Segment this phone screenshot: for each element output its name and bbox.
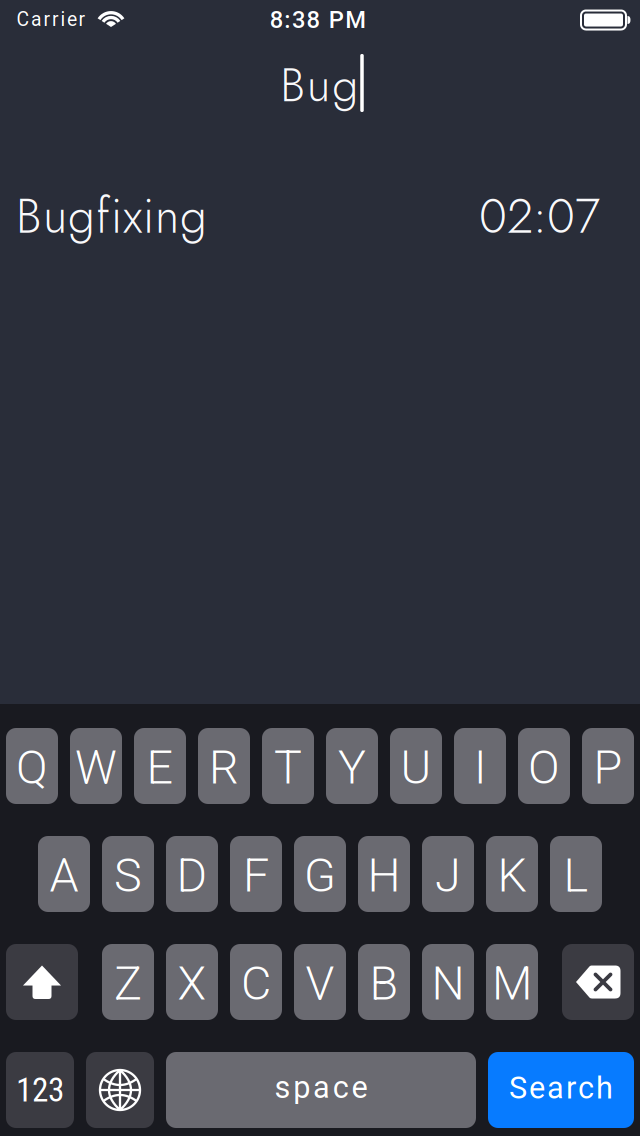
staticText: 8:38 PM (270, 6, 366, 34)
staticText: Search (509, 1070, 613, 1106)
staticText: Bug (280, 51, 358, 119)
button[interactable]: D (166, 836, 218, 912)
staticText: C (241, 956, 271, 1011)
staticText: Carrier (16, 8, 85, 31)
button[interactable]: S (102, 836, 154, 912)
staticText: M (492, 956, 532, 1011)
staticText: X (177, 956, 206, 1011)
staticText: 123 (16, 1070, 64, 1110)
button[interactable]: K (486, 836, 538, 912)
staticText: G (304, 848, 336, 903)
staticText: H (367, 848, 400, 903)
staticText: S (114, 848, 142, 903)
button[interactable]: L (550, 836, 602, 912)
button[interactable]: Search (488, 1052, 634, 1128)
button[interactable]: R (198, 728, 250, 804)
button[interactable]: T (262, 728, 314, 804)
button[interactable]: Search text field (280, 51, 364, 119)
button[interactable]: J (422, 836, 474, 912)
button[interactable]: X (166, 944, 218, 1020)
button[interactable]: W (70, 728, 122, 804)
button[interactable]: Q (6, 728, 58, 804)
staticText: space (274, 1069, 368, 1105)
button[interactable]: Delete (562, 944, 634, 1020)
staticText: Z (114, 956, 142, 1011)
button[interactable]: A (38, 836, 90, 912)
staticText: I (474, 740, 486, 795)
button[interactable]: C (230, 944, 282, 1020)
staticText: V (305, 956, 334, 1011)
button[interactable]: B (358, 944, 410, 1020)
staticText: A (49, 848, 78, 903)
staticText: Bugfixing (16, 181, 207, 251)
staticText: W (75, 740, 117, 795)
button[interactable]: 123 (6, 1052, 74, 1128)
button[interactable]: M (486, 944, 538, 1020)
staticText: J (435, 848, 461, 903)
staticText: Y (338, 740, 366, 795)
button[interactable]: O (518, 728, 570, 804)
staticText: B (369, 956, 398, 1011)
staticText: 02:07 (479, 181, 600, 251)
staticText: E (146, 740, 173, 795)
staticText: T (274, 740, 302, 795)
button[interactable]: G (294, 836, 346, 912)
button[interactable]: V (294, 944, 346, 1020)
button[interactable]: E (134, 728, 186, 804)
staticText: P (593, 740, 622, 795)
button[interactable]: Shift (6, 944, 78, 1020)
button[interactable]: F (230, 836, 282, 912)
staticText: N (431, 956, 464, 1011)
button[interactable]: N (422, 944, 474, 1020)
staticText: R (209, 740, 239, 795)
button[interactable]: Z (102, 944, 154, 1020)
staticText: L (563, 848, 588, 903)
button[interactable]: I (454, 728, 506, 804)
staticText: F (243, 848, 269, 903)
staticText: O (528, 740, 560, 795)
button[interactable]: Next keyboard (86, 1052, 154, 1128)
button[interactable]: U (390, 728, 442, 804)
staticText: K (497, 848, 526, 903)
button[interactable]: space (166, 1052, 476, 1128)
button[interactable]: H (358, 836, 410, 912)
staticText: Q (16, 740, 48, 795)
button[interactable]: P (582, 728, 634, 804)
staticText: D (176, 848, 207, 903)
button[interactable]: Bugfixing (0, 168, 640, 264)
button[interactable]: Y (326, 728, 378, 804)
staticText: U (400, 740, 431, 795)
